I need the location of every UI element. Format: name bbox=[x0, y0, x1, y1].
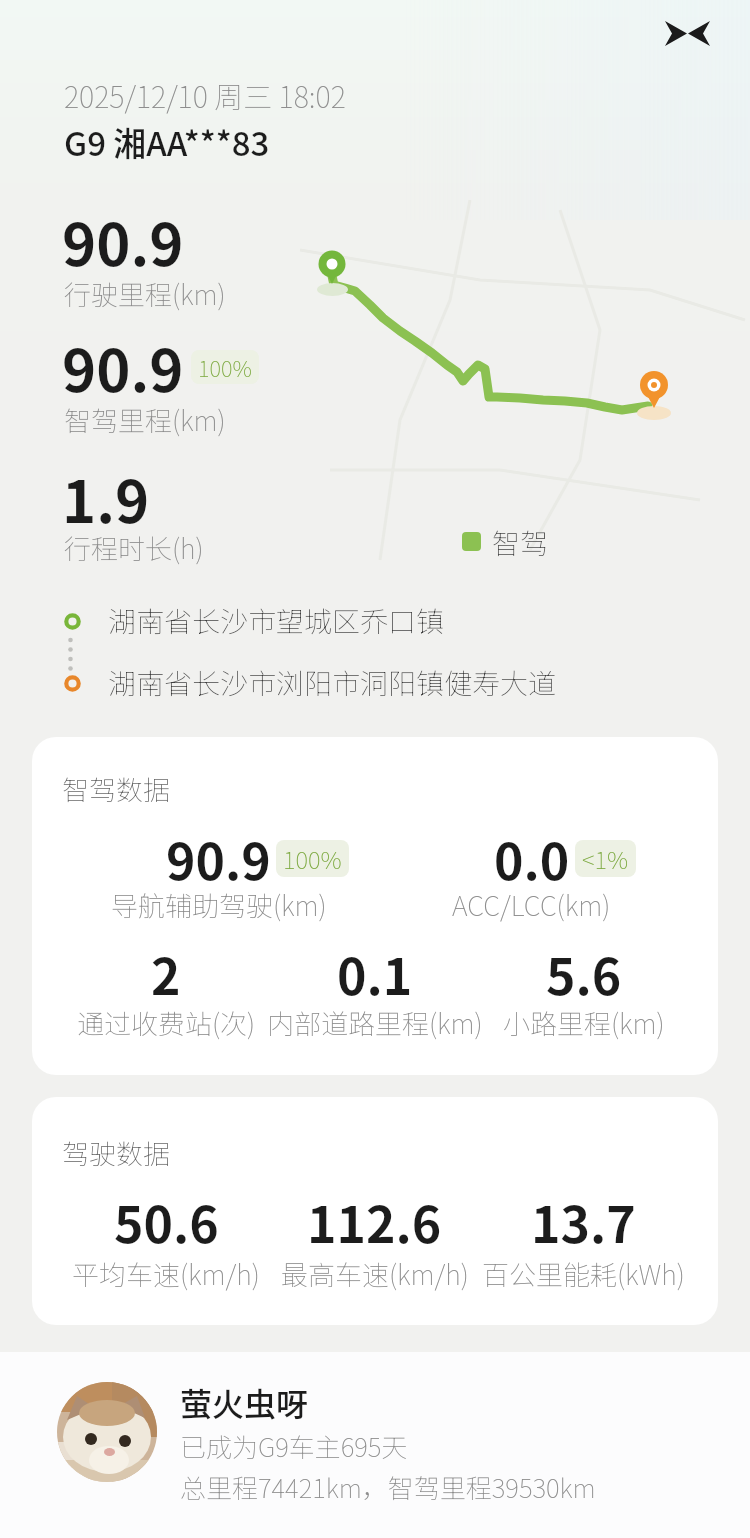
staticText: ACC/LCC(km) bbox=[452, 885, 611, 924]
button[interactable]: 智驾数据 bbox=[32, 737, 718, 1075]
staticText: 已成为G9车主695天 bbox=[180, 1427, 408, 1465]
button[interactable] bbox=[665, 21, 710, 46]
staticText: 百公里能耗(kWh) bbox=[482, 1254, 685, 1293]
staticText: 湖南省长沙市浏阳市洞阳镇健寿大道 bbox=[108, 662, 557, 703]
staticText: 0.1 bbox=[337, 937, 413, 1009]
staticText: 最高车速(km/h) bbox=[281, 1254, 469, 1293]
staticText: 2 bbox=[151, 937, 181, 1009]
staticText: 行程时长(h) bbox=[64, 528, 204, 567]
staticText: 通过收费站(次) bbox=[77, 1003, 256, 1042]
staticText: 90.9 bbox=[166, 822, 271, 894]
button[interactable]: 萤火虫呀 bbox=[0, 1352, 750, 1538]
staticText: 100% bbox=[198, 351, 252, 383]
staticText: 112.6 bbox=[307, 1185, 442, 1257]
staticText: 2025/12/10 周三 18:02 bbox=[64, 74, 346, 116]
staticText: 100% bbox=[283, 841, 342, 876]
staticText: 智驾 bbox=[492, 522, 549, 563]
button[interactable]: 驾驶数据 bbox=[32, 1097, 718, 1325]
staticText: 智驾数据 bbox=[62, 769, 170, 808]
staticText: 50.6 bbox=[114, 1185, 219, 1257]
staticText: 平均车速(km/h) bbox=[72, 1254, 260, 1293]
staticText: 行驶里程(km) bbox=[64, 274, 226, 313]
staticText: 萤火虫呀 bbox=[180, 1379, 309, 1425]
staticText: <1% bbox=[582, 841, 629, 876]
staticText: 智驾里程(km) bbox=[64, 400, 226, 439]
staticText: 驾驶数据 bbox=[62, 1133, 170, 1172]
staticText: 导航辅助驾驶(km) bbox=[111, 885, 327, 924]
staticText: G9 湘AA***83 bbox=[64, 118, 270, 166]
staticText: 总里程74421km，智驾里程39530km bbox=[180, 1468, 596, 1506]
staticText: 13.7 bbox=[531, 1185, 636, 1257]
staticText: 0.0 bbox=[494, 822, 570, 894]
staticText: 90.9 bbox=[62, 325, 184, 409]
staticText: 小路里程(km) bbox=[503, 1003, 665, 1042]
staticText: 1.9 bbox=[62, 456, 150, 540]
staticText: 90.9 bbox=[62, 199, 184, 283]
staticText: 内部道路里程(km) bbox=[267, 1003, 483, 1042]
staticText: 5.6 bbox=[546, 937, 622, 1009]
staticText: 湖南省长沙市望城区乔口镇 bbox=[108, 600, 445, 641]
